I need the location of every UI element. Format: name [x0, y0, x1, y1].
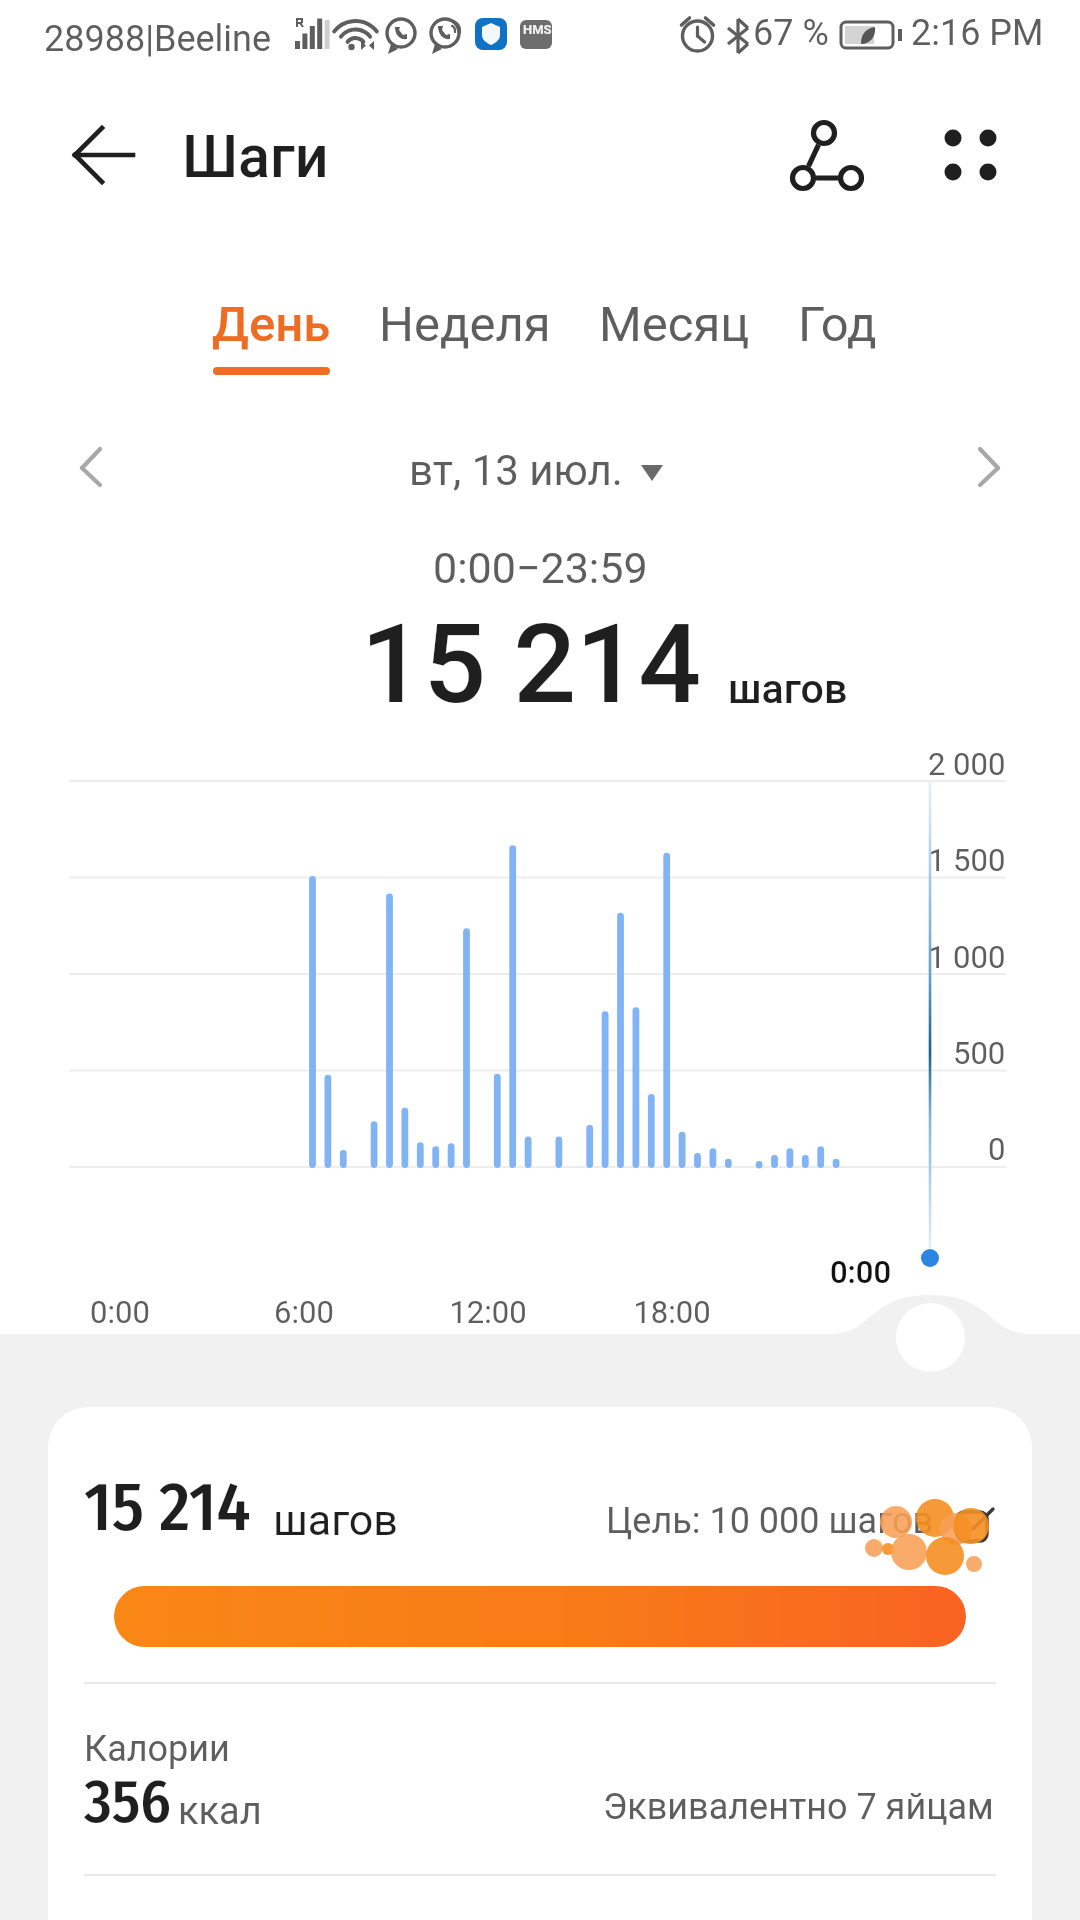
staticText: 0:00 — [20, 1294, 220, 1330]
staticText: HMS — [523, 22, 552, 37]
button[interactable]: Next day — [956, 437, 1018, 499]
staticText: вт, 13 июл. — [409, 446, 623, 495]
button[interactable]: вт, 13 июл. — [409, 446, 663, 495]
staticText: Год — [798, 296, 877, 353]
staticText: Шаги — [182, 122, 329, 191]
staticText: 0:00 — [830, 1254, 892, 1290]
staticText: 12:00 — [388, 1294, 588, 1330]
staticText: 0:00−23:59 — [433, 543, 648, 593]
button[interactable]: Back — [72, 125, 138, 187]
staticText: 2:16 PM — [911, 12, 1044, 54]
button[interactable]: День — [212, 296, 379, 375]
button[interactable]: Edit goal — [606, 1500, 994, 1549]
staticText: 0 — [988, 1131, 1006, 1167]
button[interactable]: Share — [792, 122, 862, 190]
button[interactable]: Месяц — [599, 296, 798, 353]
button[interactable]: Год — [798, 296, 877, 353]
staticText: 67 % — [753, 12, 829, 54]
staticText: 28988|Beeline — [44, 18, 272, 60]
staticText: Неделя — [379, 296, 551, 353]
staticText: шагов — [273, 1495, 398, 1545]
button[interactable]: Previous day — [62, 437, 124, 499]
staticText: 1 000 — [928, 939, 1006, 975]
staticText: Месяц — [599, 296, 750, 353]
staticText: 15 214 — [84, 1466, 251, 1548]
staticText: Эквивалентно 7 яйцам — [603, 1786, 994, 1828]
staticText: 6:00 — [204, 1294, 404, 1330]
staticText: Калории — [84, 1728, 230, 1770]
staticText: Цель: 10 000 шагов — [606, 1500, 934, 1542]
staticText: 1 500 — [928, 842, 1006, 878]
button[interactable] — [114, 1586, 966, 1647]
staticText: шагов — [728, 665, 848, 713]
button[interactable]: Неделя — [379, 296, 599, 353]
staticText: 15 214 — [361, 600, 701, 729]
staticText: 500 — [953, 1035, 1006, 1071]
button[interactable]: 15 214 — [84, 1466, 398, 1548]
staticText: 356 — [84, 1766, 171, 1838]
staticText: ккал — [178, 1789, 262, 1834]
staticText: День — [212, 296, 331, 353]
staticText: 18:00 — [572, 1294, 772, 1330]
button[interactable]: More options — [936, 124, 1004, 186]
staticText: 2 000 — [928, 746, 1006, 782]
